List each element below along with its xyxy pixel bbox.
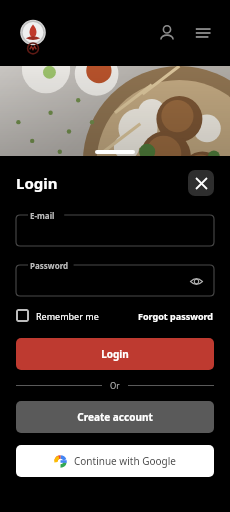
staticText: Or	[110, 380, 120, 391]
button[interactable]: Menu	[190, 20, 216, 46]
staticText: Login	[16, 173, 58, 193]
staticText: E-mail	[30, 210, 55, 221]
button[interactable]: Show password	[188, 273, 204, 289]
button[interactable]: Create account	[16, 401, 214, 433]
button[interactable]: Forgot password	[138, 310, 214, 322]
button[interactable]: Continue with Google	[16, 445, 214, 477]
button[interactable]: Account	[154, 20, 180, 46]
staticText: Login	[101, 347, 129, 361]
staticText: Password	[30, 260, 69, 271]
button[interactable]: Logo	[17, 19, 49, 51]
button[interactable]: Close	[188, 170, 214, 196]
button[interactable]: E-mail	[16, 210, 214, 246]
staticText: Remember me	[36, 310, 99, 322]
staticText: Forgot password	[138, 310, 214, 322]
button[interactable]: Remember me	[16, 309, 99, 322]
staticText: Create account	[77, 410, 153, 424]
staticText: Continue with Google	[74, 454, 176, 468]
button[interactable]: Login	[16, 338, 214, 370]
button[interactable]: Password	[16, 260, 214, 296]
